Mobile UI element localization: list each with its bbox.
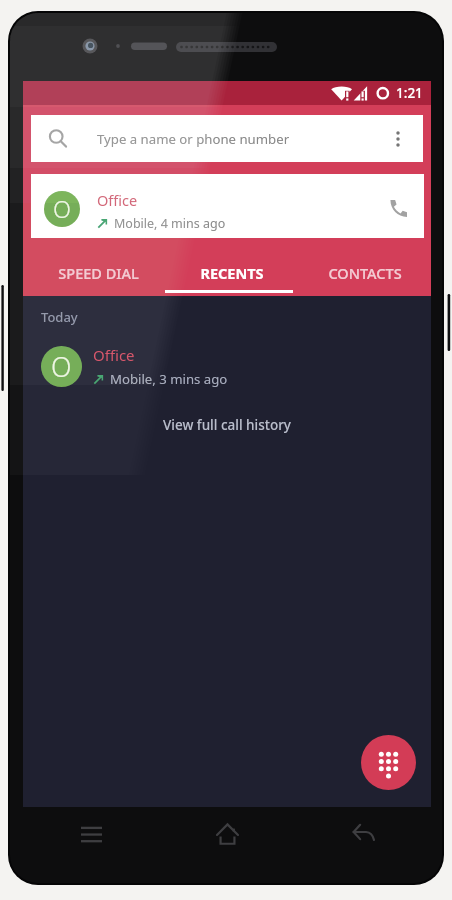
staticText: View full call history <box>163 416 291 434</box>
button[interactable]: SPEED DIAL <box>31 257 165 296</box>
staticText: Mobile, 3 mins ago <box>110 370 228 388</box>
button[interactable]: Recent apps <box>23 809 159 859</box>
staticText: Office <box>93 345 135 365</box>
button[interactable]: Open dialpad <box>361 735 416 790</box>
button[interactable]: CONTACTS <box>298 257 431 296</box>
button[interactable]: More options <box>379 115 423 162</box>
staticText: Today <box>41 308 78 326</box>
button[interactable]: O <box>31 174 424 238</box>
staticText: SPEED DIAL <box>58 263 139 283</box>
button[interactable]: RECENTS <box>165 257 298 296</box>
button[interactable]: Call <box>378 174 424 238</box>
button[interactable]: View full call history <box>23 410 431 440</box>
staticText: CONTACTS <box>328 263 402 283</box>
staticText: Type a name or phone number <box>97 130 290 148</box>
button[interactable]: Back <box>295 809 431 859</box>
staticText: 1:21 <box>396 84 423 102</box>
button[interactable]: Type a name or phone number <box>31 115 423 162</box>
staticText: RECENTS <box>200 263 264 283</box>
button[interactable]: Home <box>159 809 295 859</box>
staticText: O <box>51 349 72 385</box>
button[interactable]: O <box>23 335 431 389</box>
staticText: Mobile, 4 mins ago <box>114 215 226 232</box>
staticText: Office <box>97 190 138 210</box>
staticText: O <box>53 193 71 225</box>
